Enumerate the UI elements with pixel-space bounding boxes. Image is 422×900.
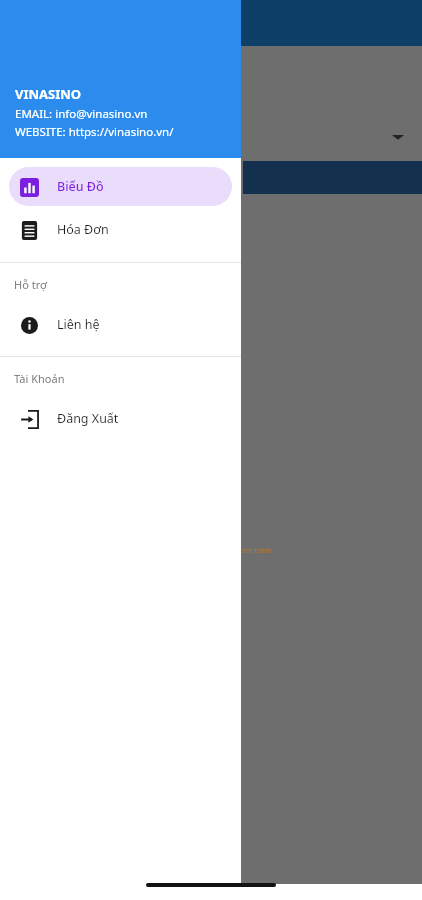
staticText: Liên hệ [57,316,100,333]
other: Đăng Xuất [20,410,39,429]
other: Biểu Đồ [20,178,39,197]
staticText: VINASINO [15,85,82,103]
staticText: Tài Khoản [14,371,65,386]
staticText: Biểu Đồ [57,178,104,195]
button[interactable]: Đăng Xuất [9,399,232,438]
staticText: Đăng Xuất [57,410,119,427]
staticText: Hóa Đơn [57,221,109,238]
other: Liên hệ [21,317,38,334]
staticText: WEBSITE: https://vinasino.vn/ [15,124,174,140]
staticText: Xem thêm [238,546,272,556]
staticText: Hỗ trợ [14,277,47,292]
staticText: EMAIL: info@vinasino.vn [15,106,148,122]
other: Hóa Đơn [20,221,39,240]
button[interactable]: Liên hệ [9,305,232,344]
button[interactable]: Hóa Đơn [9,210,232,249]
button[interactable]: Biểu Đồ [9,167,232,206]
